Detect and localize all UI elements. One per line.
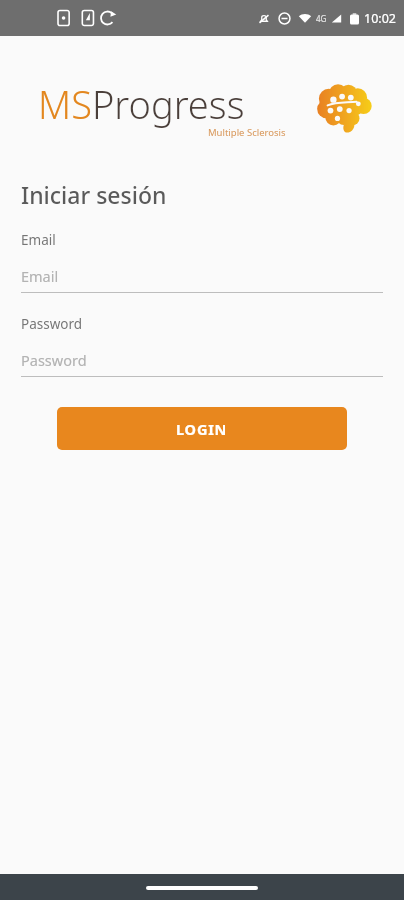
staticText: LOGIN bbox=[176, 419, 228, 439]
button[interactable]: Password bbox=[21, 350, 383, 377]
button[interactable]: Email bbox=[21, 266, 383, 293]
staticText: Password bbox=[21, 315, 83, 333]
staticText: Password bbox=[21, 350, 87, 370]
staticText: 10:02 bbox=[364, 10, 396, 27]
staticText: Email bbox=[21, 266, 59, 286]
button[interactable]: LOGIN bbox=[57, 407, 347, 450]
staticText: Iniciar sesión bbox=[21, 179, 167, 210]
staticText: Multiple Sclerosis bbox=[208, 126, 286, 139]
button[interactable]: Home gesture bar bbox=[146, 886, 258, 890]
staticText: MSProgress bbox=[38, 78, 245, 130]
staticText: 4G bbox=[316, 13, 327, 24]
staticText: Email bbox=[21, 231, 56, 249]
